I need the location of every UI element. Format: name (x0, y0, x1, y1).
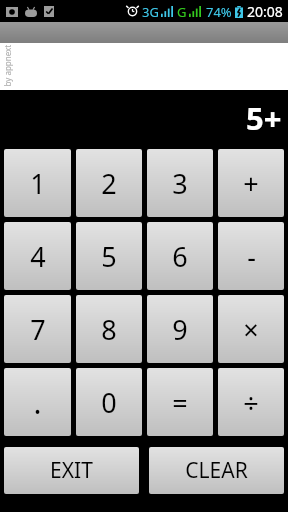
staticText: 2 (101, 165, 117, 202)
button[interactable]: by appnext (0, 22, 288, 90)
button[interactable]: = (147, 368, 213, 436)
staticText: ÷ (243, 384, 259, 421)
button[interactable]: 5 (76, 222, 142, 290)
staticText: × (243, 311, 259, 348)
button[interactable]: - (218, 222, 284, 290)
button[interactable]: ÷ (218, 368, 284, 436)
staticText: G (177, 3, 187, 21)
staticText: 3G (142, 3, 159, 21)
staticText: 9 (172, 311, 188, 348)
staticText: + (243, 165, 259, 202)
staticText: 74% (206, 3, 232, 21)
staticText: . (33, 382, 42, 423)
button[interactable]: 7 (4, 295, 71, 363)
button[interactable]: . (4, 368, 71, 436)
staticText: 8 (101, 311, 117, 348)
staticText: 3 (172, 165, 188, 202)
button[interactable]: 2 (76, 149, 142, 217)
staticText: EXIT (50, 456, 93, 485)
button[interactable]: + (218, 149, 284, 217)
button[interactable]: 3 (147, 149, 213, 217)
staticText: 4 (30, 238, 46, 275)
staticText: - (247, 238, 256, 275)
button[interactable]: 4 (4, 222, 71, 290)
button[interactable]: 8 (76, 295, 142, 363)
button[interactable]: × (218, 295, 284, 363)
staticText: by appnext (1, 44, 12, 86)
button[interactable]: 1 (4, 149, 71, 217)
staticText: 5+ (246, 97, 282, 139)
button[interactable]: EXIT (4, 447, 139, 494)
button[interactable]: 9 (147, 295, 213, 363)
staticText: CLEAR (185, 456, 248, 485)
staticText: 1 (30, 165, 46, 202)
staticText: 0 (101, 384, 117, 421)
staticText: 5 (101, 238, 117, 275)
button[interactable]: 6 (147, 222, 213, 290)
button[interactable]: 0 (76, 368, 142, 436)
staticText: 7 (30, 311, 46, 348)
staticText: 6 (172, 238, 188, 275)
staticText: = (172, 384, 188, 421)
button[interactable]: CLEAR (149, 447, 284, 494)
staticText: 20:08 (247, 2, 283, 21)
